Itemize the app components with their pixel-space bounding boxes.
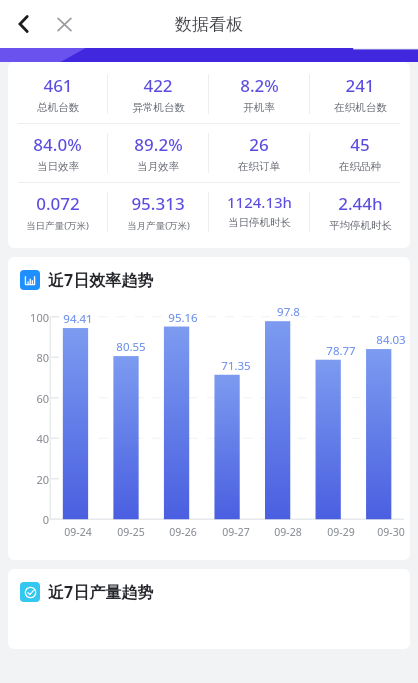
button[interactable]: 422 <box>108 74 208 114</box>
staticText: 近7日效率趋势 <box>48 269 154 291</box>
staticText: 20 <box>36 472 49 487</box>
staticText: 当月效率 <box>137 160 179 173</box>
staticText: 当日停机时长 <box>228 216 291 229</box>
staticText: 1124.13h <box>227 192 292 212</box>
staticText: 45 <box>350 133 370 156</box>
staticText: 2.44h <box>338 192 383 215</box>
staticText: 当日产量(万米) <box>26 219 89 232</box>
button[interactable]: 89.2% <box>108 133 208 173</box>
staticText: 95.313 <box>131 192 185 215</box>
button[interactable]: Close <box>46 6 82 42</box>
button[interactable]: 45 <box>310 133 410 173</box>
staticText: 89.2% <box>134 133 183 156</box>
staticText: 在织订单 <box>238 160 280 173</box>
staticText: 当月产量(万米) <box>127 219 190 232</box>
button[interactable]: 95.313 <box>108 192 208 232</box>
staticText: 97.8 <box>277 304 300 320</box>
staticText: 80 <box>36 350 49 365</box>
staticText: 总机台数 <box>37 101 79 114</box>
staticText: 422 <box>143 74 173 97</box>
staticText: 26 <box>249 133 269 156</box>
staticText: 在织品种 <box>339 160 381 173</box>
staticText: 100 <box>30 310 49 325</box>
staticText: 0.072 <box>36 192 80 215</box>
staticText: 09-25 <box>117 525 145 539</box>
staticText: 09-28 <box>274 525 302 539</box>
staticText: 84.03 <box>376 332 406 348</box>
staticText: 数据看板 <box>175 14 243 35</box>
staticText: 09-30 <box>377 525 405 539</box>
staticText: 异常机台数 <box>132 101 185 114</box>
button[interactable]: 84.0% <box>8 133 107 173</box>
button[interactable]: 1124.13h <box>209 192 309 229</box>
button[interactable]: 近7日效率趋势 <box>20 269 410 291</box>
staticText: 71.35 <box>221 358 251 374</box>
staticText: 241 <box>345 74 375 97</box>
staticText: 94.41 <box>63 311 93 327</box>
staticText: 84.0% <box>33 133 82 156</box>
staticText: 09-29 <box>327 525 355 539</box>
staticText: 8.2% <box>240 74 279 97</box>
staticText: 60 <box>36 391 49 406</box>
button[interactable]: 241 <box>310 74 410 114</box>
button[interactable]: 0.072 <box>8 192 107 232</box>
staticText: 09-26 <box>169 525 197 539</box>
staticText: 95.16 <box>168 310 198 326</box>
button[interactable]: Back <box>6 6 42 42</box>
staticText: 开机率 <box>243 101 275 114</box>
staticText: 09-27 <box>222 525 250 539</box>
staticText: 近7日产量趋势 <box>48 581 154 603</box>
staticText: 461 <box>43 74 73 97</box>
button[interactable]: 8.2% <box>209 74 309 114</box>
button[interactable]: 2.44h <box>310 192 410 232</box>
staticText: 平均停机时长 <box>329 219 392 232</box>
button[interactable]: 26 <box>209 133 309 173</box>
staticText: 40 <box>36 431 49 446</box>
staticText: 09-24 <box>64 525 92 539</box>
button[interactable]: 461 <box>8 74 107 114</box>
button[interactable]: 近7日产量趋势 <box>20 581 410 603</box>
staticText: 当日效率 <box>37 160 79 173</box>
staticText: 78.77 <box>326 343 356 359</box>
staticText: 0 <box>42 512 49 527</box>
staticText: 80.55 <box>116 339 146 355</box>
staticText: 在织机台数 <box>334 101 387 114</box>
